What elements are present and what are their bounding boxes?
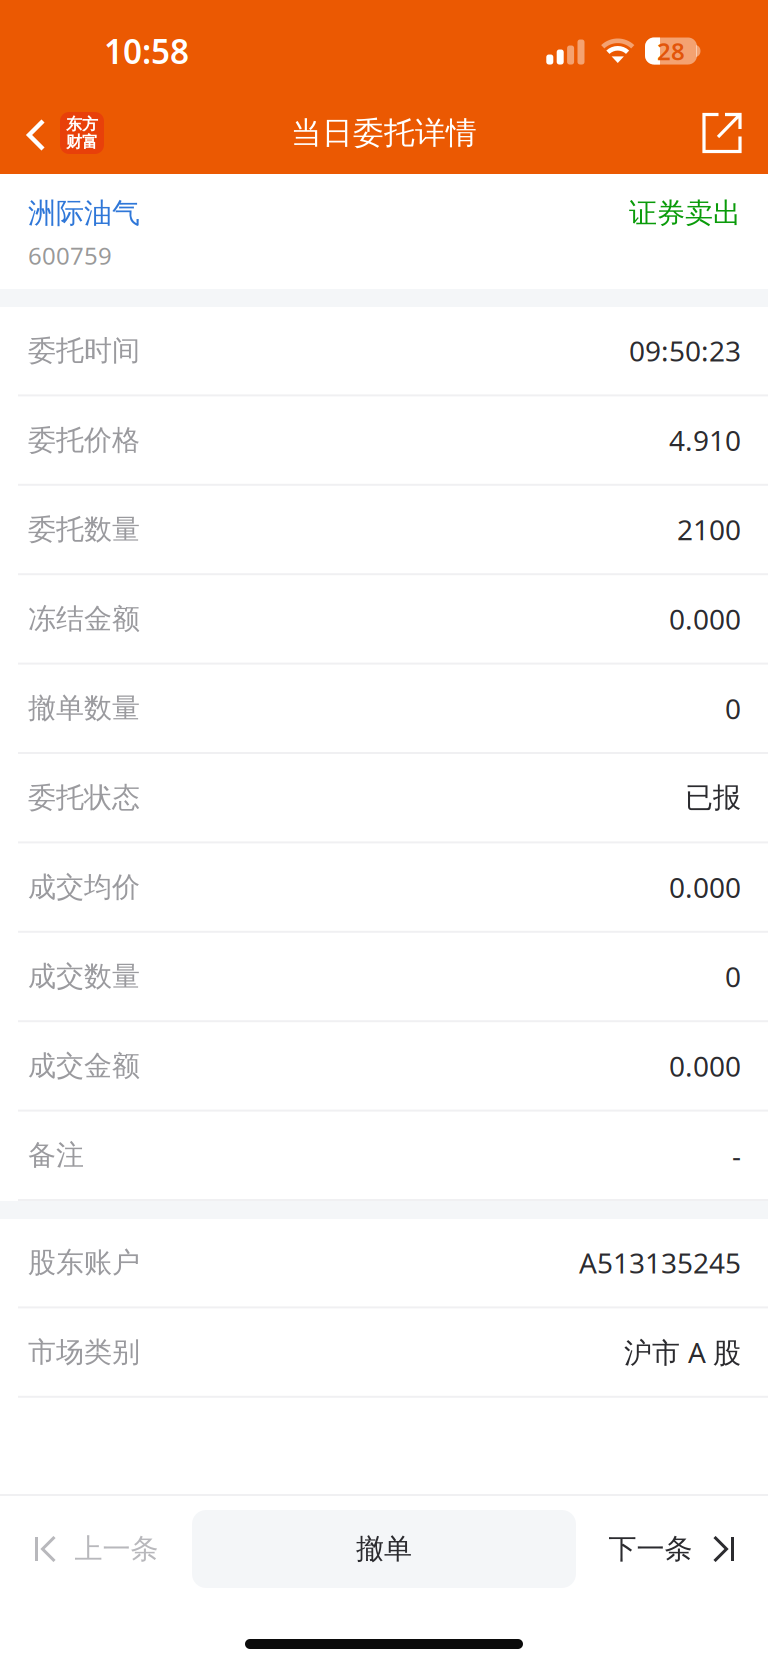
staticText: 当日委托详情 [291, 114, 477, 152]
button[interactable]: 分享 [676, 92, 768, 174]
staticText: 证券卖出 [629, 196, 741, 230]
button[interactable]: 撤单 [192, 1510, 576, 1588]
button[interactable]: 下一条 [576, 1510, 768, 1588]
staticText: 撤单数量 [28, 691, 140, 725]
staticText: 委托价格 [28, 423, 140, 457]
staticText: 下一条 [608, 1532, 692, 1566]
staticText: 市场类别 [28, 1335, 140, 1369]
staticText: 委托数量 [28, 512, 140, 547]
staticText: 0.000 [669, 600, 741, 637]
staticText: 600759 [28, 239, 112, 271]
staticText: 2100 [677, 511, 741, 548]
staticText: 东方 [66, 114, 98, 134]
staticText: 0 [725, 690, 741, 727]
staticText: 股东账户 [28, 1245, 140, 1280]
staticText: A513135245 [579, 1244, 741, 1281]
staticText: 09:50:23 [629, 332, 741, 369]
staticText: 10:58 [104, 29, 189, 73]
staticText: 备注 [28, 1138, 84, 1172]
staticText: - [732, 1137, 741, 1174]
button[interactable]: 返回 东方财富 [0, 92, 122, 174]
button[interactable]: 上一条 [0, 1510, 192, 1588]
staticText: 财富 [66, 132, 98, 152]
staticText: 成交数量 [28, 959, 140, 994]
staticText: 委托时间 [28, 333, 140, 368]
staticText: 0.000 [669, 1047, 741, 1084]
staticText: 冻结金额 [28, 602, 140, 636]
staticText: 撤单 [356, 1532, 412, 1566]
staticText: 沪市 A 股 [624, 1333, 741, 1371]
staticText: 4.910 [669, 421, 741, 459]
staticText: 洲际油气 [28, 196, 140, 230]
staticText: 上一条 [74, 1532, 158, 1566]
staticText: 委托状态 [28, 780, 140, 815]
staticText: 成交均价 [28, 870, 140, 904]
staticText: 成交金额 [28, 1049, 140, 1083]
staticText: 已报 [685, 780, 741, 815]
staticText: 28 [657, 35, 685, 67]
staticText: 0.000 [669, 868, 741, 906]
staticText: 0 [725, 958, 741, 995]
